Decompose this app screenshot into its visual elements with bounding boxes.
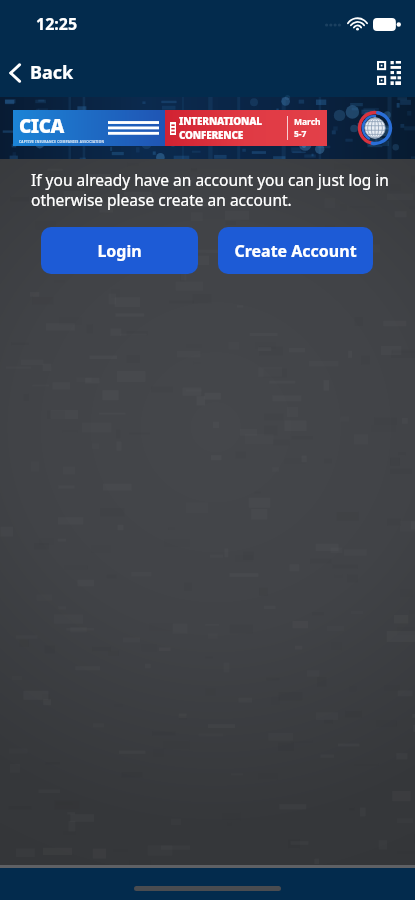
staticText: 12:25	[36, 13, 78, 35]
staticText: March	[294, 116, 321, 128]
staticText: Create Account	[234, 240, 357, 262]
button[interactable]: Create Account	[218, 227, 373, 274]
staticText: 5-7	[294, 128, 307, 140]
staticText: Back	[30, 60, 74, 85]
staticText: INTERNATIONAL	[179, 114, 262, 128]
staticText: CICA	[19, 113, 64, 139]
staticText: CAPTIVE INSURANCE COMPANIES ASSOCIATION	[19, 140, 105, 144]
button[interactable]: Scan QR code	[373, 57, 405, 89]
staticText: Login	[97, 240, 142, 262]
staticText: CONFERENCE	[179, 128, 244, 142]
button[interactable]: Back	[0, 54, 86, 91]
button[interactable]: Login	[41, 227, 198, 274]
staticText: If you already have an account you can j…	[31, 169, 389, 211]
